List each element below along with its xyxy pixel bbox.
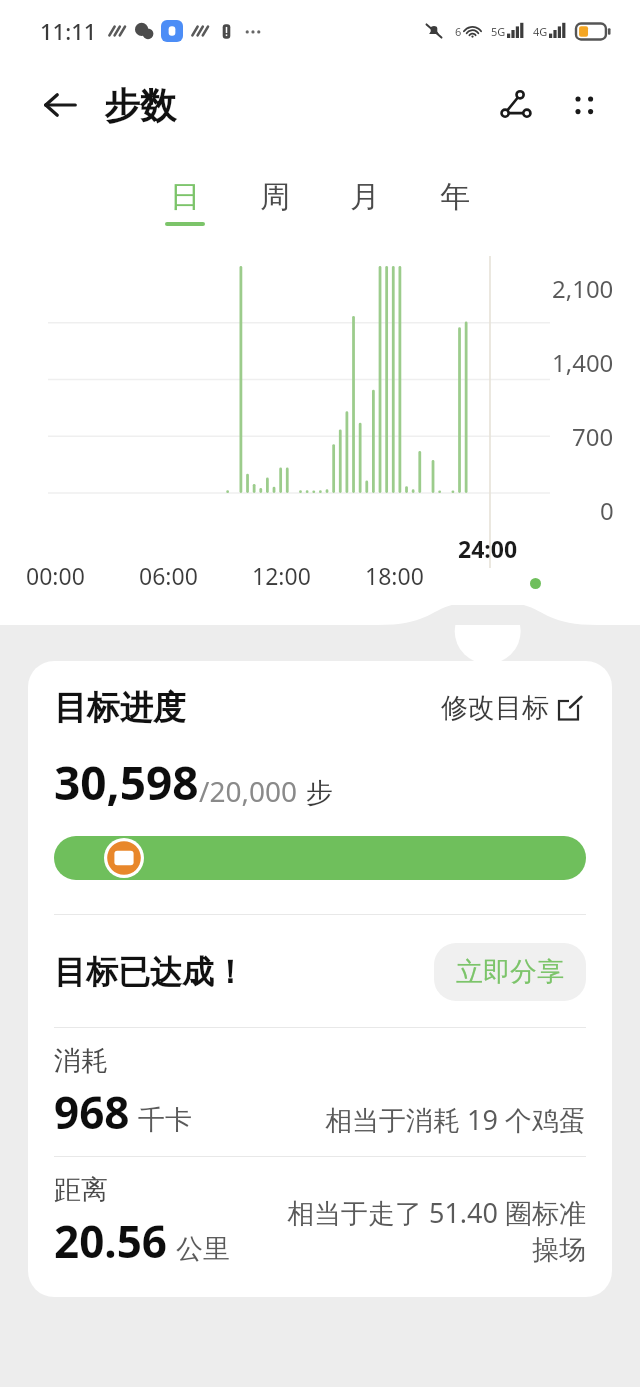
staticText: 18:00 [365,560,424,591]
staticText: 目标已达成！ [54,952,246,992]
staticText: 4G [533,24,548,39]
staticText: 00:00 [26,560,85,591]
button[interactable]: 立即分享 [434,943,586,1001]
staticText: 周 [260,178,290,216]
button[interactable]: 年 [431,176,479,228]
staticText: 06:00 [139,560,198,591]
staticText: 12:00 [252,560,311,591]
staticText: 消耗 [54,1044,108,1078]
staticText: 5G [491,24,506,39]
staticText: 24:00 [458,533,518,564]
staticText: 0 [600,494,614,527]
staticText: 1,400 [552,346,614,379]
staticText: 距离 [54,1173,108,1207]
button[interactable]: Back [34,79,86,131]
button[interactable]: 月 [341,176,389,228]
staticText: 700 [572,420,614,453]
button[interactable]: 日 [161,176,209,228]
staticText: 步 [306,776,333,810]
button[interactable]: Share [488,77,544,133]
staticText: 修改目标 [441,691,549,725]
button[interactable]: 周 [251,176,299,228]
staticText: 步数 [104,83,176,128]
staticText: 30,598 [54,751,199,814]
staticText: 11:11 [40,16,97,46]
staticText: 月 [350,178,380,216]
staticText: 6 [455,24,462,39]
staticText: 年 [440,178,470,216]
staticText: 相当于走了 51.40 圈标准操场 [266,1194,586,1267]
staticText: 20.56 [54,1211,168,1271]
staticText: 相当于消耗 19 个鸡蛋 [325,1101,586,1138]
button[interactable]: More options [556,77,612,133]
staticText: 968 [54,1082,130,1142]
staticText: 目标进度 [54,687,186,729]
button[interactable]: 修改目标 [437,687,586,729]
staticText: 2,100 [552,272,614,305]
staticText: 千卡 [138,1103,192,1137]
staticText: 日 [170,178,200,216]
staticText: /20,000 [199,772,298,810]
staticText: 公里 [176,1232,230,1266]
staticText: 立即分享 [456,955,564,989]
